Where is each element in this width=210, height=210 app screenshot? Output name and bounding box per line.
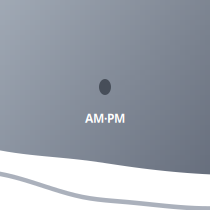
staticText: AM·PM xyxy=(85,110,125,126)
button[interactable]: AM·PM xyxy=(85,110,125,126)
button[interactable]: Complication xyxy=(0,0,210,210)
